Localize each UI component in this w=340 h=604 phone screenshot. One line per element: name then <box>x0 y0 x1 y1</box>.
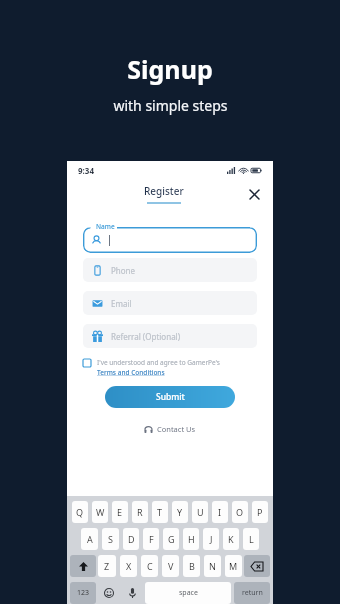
staticText: F <box>149 533 154 545</box>
button[interactable]: U <box>192 501 208 523</box>
button[interactable]: J <box>203 528 219 550</box>
button[interactable]: I <box>212 501 228 523</box>
button[interactable]: Emoji <box>99 582 119 604</box>
staticText: D <box>128 533 135 545</box>
staticText: I <box>218 506 222 518</box>
button[interactable]: F <box>143 528 159 550</box>
button[interactable]: B <box>183 555 200 577</box>
button[interactable]: C <box>141 555 158 577</box>
button[interactable]: H <box>183 528 199 550</box>
staticText: space <box>179 588 198 598</box>
staticText: A <box>87 533 93 545</box>
staticText: Q <box>76 506 84 518</box>
button[interactable]: Terms and Conditions <box>97 368 165 377</box>
button[interactable]: A <box>81 528 98 550</box>
staticText: P <box>257 506 263 518</box>
button[interactable]: M <box>225 555 242 577</box>
staticText: C <box>147 560 153 572</box>
staticText: U <box>197 506 204 518</box>
staticText: 123 <box>77 588 90 598</box>
button[interactable]: T <box>152 501 168 523</box>
button[interactable]: N <box>204 555 221 577</box>
staticText: Submit <box>156 391 185 403</box>
staticText: J <box>210 533 213 545</box>
staticText: B <box>189 560 195 572</box>
button[interactable]: E <box>112 501 128 523</box>
staticText: with simple steps <box>113 96 228 115</box>
staticText: I've understood and agree to GamerPe's <box>97 358 220 367</box>
button[interactable]: W <box>92 501 108 523</box>
staticText: Name <box>96 222 115 231</box>
button[interactable]: Shift <box>70 555 96 577</box>
button[interactable]: Phone <box>83 258 257 282</box>
button[interactable]: X <box>120 555 137 577</box>
button[interactable]: Y <box>172 501 188 523</box>
staticText: G <box>168 533 175 545</box>
staticText: Email <box>111 298 132 309</box>
staticText: Z <box>104 560 110 572</box>
button[interactable]: Microphone <box>122 582 142 604</box>
button[interactable]: space <box>145 582 231 604</box>
button[interactable]: return <box>234 582 270 604</box>
staticText: K <box>228 533 234 545</box>
staticText: O <box>236 506 244 518</box>
staticText: S <box>108 533 113 545</box>
button[interactable]: D <box>123 528 139 550</box>
button[interactable]: Z <box>98 555 116 577</box>
staticText: Signup <box>127 52 213 86</box>
button[interactable]: K <box>223 528 239 550</box>
button[interactable]: O <box>232 501 248 523</box>
button[interactable]: Contact Us <box>140 422 200 436</box>
staticText: L <box>249 533 254 545</box>
staticText: W <box>96 506 105 518</box>
button[interactable]: Q <box>72 501 88 523</box>
button[interactable]: Referral (Optional) <box>83 324 257 348</box>
button[interactable]: R <box>132 501 148 523</box>
staticText: H <box>188 533 195 545</box>
button[interactable]: P <box>252 501 268 523</box>
button[interactable]: Close <box>244 184 264 204</box>
button[interactable]: I've understood and agree to GamerPe's <box>83 358 259 377</box>
staticText: M <box>229 560 238 572</box>
button[interactable]: G <box>163 528 179 550</box>
staticText: T <box>157 506 163 518</box>
button[interactable] <box>83 227 257 253</box>
button[interactable]: S <box>102 528 119 550</box>
button[interactable]: V <box>162 555 179 577</box>
staticText: N <box>209 560 216 572</box>
staticText: 9:34 <box>78 165 94 176</box>
button[interactable]: Email <box>83 291 257 315</box>
staticText: E <box>117 506 123 518</box>
button[interactable]: 123 <box>70 582 96 604</box>
staticText: X <box>126 560 132 572</box>
staticText: V <box>168 560 174 572</box>
staticText: Contact Us <box>157 424 196 434</box>
staticText: Phone <box>111 265 136 276</box>
staticText: Register <box>144 184 184 198</box>
staticText: Referral (Optional) <box>111 331 181 342</box>
button[interactable]: Submit <box>105 386 235 408</box>
staticText: return <box>242 588 263 598</box>
staticText: Y <box>177 506 183 518</box>
button[interactable]: L <box>243 528 259 550</box>
staticText: R <box>137 506 143 518</box>
button[interactable]: Backspace <box>244 555 270 577</box>
